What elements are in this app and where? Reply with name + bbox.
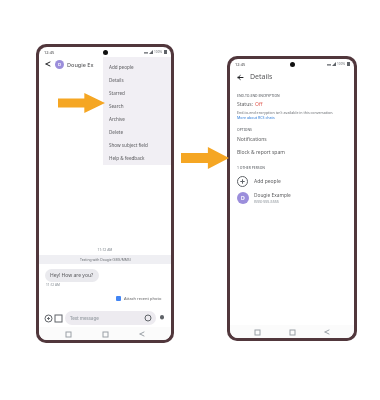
button[interactable]: Attach recent photo: [112, 293, 166, 304]
staticText: 11:12 AM: [46, 283, 60, 287]
staticText: Starred: [109, 90, 125, 96]
staticText: Add people: [254, 178, 281, 185]
button[interactable]: Home: [97, 328, 113, 340]
button[interactable]: Details: [103, 73, 171, 86]
button[interactable]: Back: [43, 59, 53, 69]
button[interactable]: More about RCS chats: [237, 115, 275, 120]
button[interactable]: Help & feedback: [103, 151, 171, 164]
staticText: Add people: [109, 64, 134, 70]
staticText: 100%: [154, 50, 163, 54]
button[interactable]: Add people: [103, 60, 171, 73]
staticText: Dougie Ex: [67, 61, 94, 68]
staticText: D: [58, 62, 61, 67]
button[interactable]: Recents: [60, 328, 76, 340]
staticText: 1 OTHER PERSON: [237, 165, 265, 170]
button[interactable]: Add: [43, 313, 53, 323]
button[interactable]: Recents: [249, 326, 265, 338]
button[interactable]: Add people: [230, 173, 354, 189]
button[interactable]: Back: [319, 326, 335, 338]
button[interactable]: Status:: [237, 101, 263, 108]
staticText: D: [241, 195, 245, 202]
button[interactable]: Text message: [65, 311, 156, 325]
staticText: 12:45: [235, 62, 246, 67]
button[interactable]: Show subject field: [103, 138, 171, 151]
button[interactable]: Home: [284, 326, 300, 338]
button[interactable]: Back: [134, 328, 150, 340]
staticText: 11:12 AM: [39, 247, 171, 252]
staticText: Dougie Example: [254, 192, 291, 199]
staticText: Attach recent photo: [124, 296, 162, 301]
button[interactable]: Archive: [103, 112, 171, 125]
staticText: Block & report spam: [237, 149, 285, 156]
button[interactable]: Block & report spam: [230, 146, 354, 159]
staticText: End-to-end encryption isn't available in…: [237, 110, 334, 115]
staticText: Hey! How are you?: [50, 272, 94, 279]
staticText: Show subject field: [109, 142, 148, 148]
staticText: Help & feedback: [109, 155, 145, 161]
staticText: Search: [109, 103, 124, 109]
staticText: Delete: [109, 129, 123, 135]
staticText: Texting with Dougie (SMS/MMS): [80, 257, 131, 262]
staticText: 12:45: [44, 50, 55, 55]
button[interactable]: Voice: [156, 313, 167, 324]
button[interactable]: Search: [103, 99, 171, 112]
button[interactable]: D: [230, 189, 354, 207]
staticText: Notifications: [237, 136, 267, 143]
staticText: (555) 555-5555: [254, 199, 279, 204]
staticText: Off: [255, 101, 263, 108]
staticText: Text message: [70, 315, 99, 321]
button[interactable]: Starred: [103, 86, 171, 99]
staticText: Details: [109, 77, 124, 83]
button[interactable]: Delete: [103, 125, 171, 138]
staticText: END-TO-END ENCRYPTION: [237, 93, 280, 98]
staticText: 100%: [337, 62, 346, 66]
staticText: Status:: [237, 101, 255, 108]
staticText: Details: [250, 72, 273, 82]
button[interactable]: Notifications: [230, 133, 354, 146]
staticText: Archive: [109, 116, 125, 122]
button[interactable]: Back: [235, 72, 245, 82]
button[interactable]: Gallery: [53, 313, 63, 323]
staticText: OPTIONS: [237, 127, 252, 132]
